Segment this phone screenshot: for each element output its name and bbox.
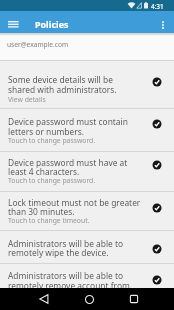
staticText: user@example.com bbox=[7, 40, 69, 49]
staticText: Lock timeout must not be greater bbox=[8, 197, 141, 208]
button[interactable] bbox=[0, 152, 174, 191]
staticText: Touch to change timeout. bbox=[8, 216, 90, 225]
staticText: Device password must contain bbox=[8, 116, 128, 127]
button[interactable] bbox=[2, 16, 24, 32]
button[interactable] bbox=[0, 61, 174, 108]
button[interactable] bbox=[122, 288, 146, 310]
button[interactable] bbox=[77, 288, 101, 310]
staticText: Administrators will be able to bbox=[8, 270, 124, 281]
staticText: remotely remove account from bbox=[8, 280, 130, 291]
button[interactable] bbox=[0, 231, 174, 263]
staticText: View details bbox=[8, 95, 46, 104]
staticText: letters or numbers. bbox=[8, 126, 84, 137]
button[interactable] bbox=[32, 288, 56, 310]
button[interactable] bbox=[156, 16, 170, 34]
button[interactable] bbox=[0, 109, 174, 151]
staticText: shared with administrators. bbox=[8, 84, 117, 95]
staticText: Touch to change password. bbox=[8, 176, 96, 185]
staticText: Some device details will be bbox=[8, 74, 113, 85]
button[interactable] bbox=[0, 192, 174, 231]
staticText: remotely wipe the device. bbox=[8, 247, 109, 258]
button[interactable] bbox=[0, 33, 174, 60]
staticText: Administrators will be able to bbox=[8, 238, 124, 249]
staticText: least 4 characters. bbox=[8, 166, 80, 177]
button[interactable] bbox=[0, 264, 174, 288]
staticText: Policies bbox=[35, 18, 69, 30]
staticText: Device password must have at bbox=[8, 157, 128, 168]
staticText: 4:31 bbox=[151, 2, 164, 11]
staticText: than 30 minutes. bbox=[8, 206, 75, 217]
staticText: Touch to change password. bbox=[8, 136, 96, 145]
